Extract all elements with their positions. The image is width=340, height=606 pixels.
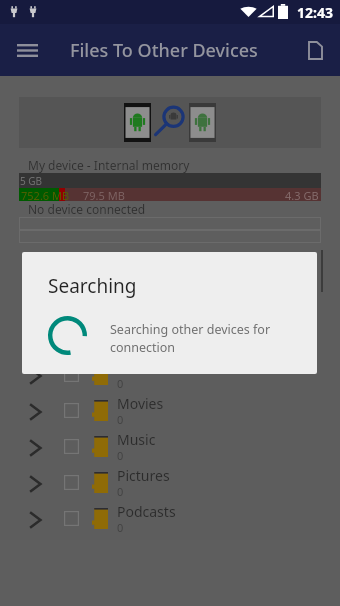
button[interactable]: Movies [0,394,340,430]
staticText: No device connected [28,201,146,217]
staticText: Searching [48,273,137,299]
staticText: Movies [117,394,164,413]
button[interactable]: Alarms [0,250,340,286]
staticText: 0 [117,448,124,463]
button[interactable]: DCIM [0,322,340,358]
staticText: connection [110,339,176,356]
staticText: Podcasts [117,502,176,521]
staticText: 752.6 MB [21,188,70,201]
staticText: 4.3 GB [285,188,319,201]
staticText: 0 [117,484,124,499]
staticText: Alarms [117,250,163,269]
button[interactable]: Music [0,430,340,466]
staticText: 0 [117,376,124,391]
staticText: DCIM [117,322,154,341]
staticText: Download [117,358,184,377]
staticText: 0 [117,340,124,355]
button[interactable]: Pictures [0,466,340,502]
staticText: Music [117,430,156,449]
staticText: 5 GB [20,174,43,188]
staticText: 0 [117,520,124,535]
staticText: 12:43 [297,3,333,22]
button[interactable]: Podcasts [0,502,340,538]
staticText: Android [117,286,170,305]
staticText: Files To Other Devices [70,38,258,63]
button[interactable]: Android [0,286,340,322]
staticText: Pictures [117,466,170,485]
button[interactable]: Select device [19,97,321,148]
staticText: My device - Internal memory [28,157,190,173]
button[interactable]: Open navigation drawer [8,31,46,69]
staticText: 0 [117,268,124,283]
staticText: 0 [117,412,124,427]
button[interactable]: New file [296,31,334,69]
staticText: 79.5 MB [83,188,125,201]
staticText: Searching other devices for [110,321,271,338]
button[interactable]: Download [0,358,340,394]
